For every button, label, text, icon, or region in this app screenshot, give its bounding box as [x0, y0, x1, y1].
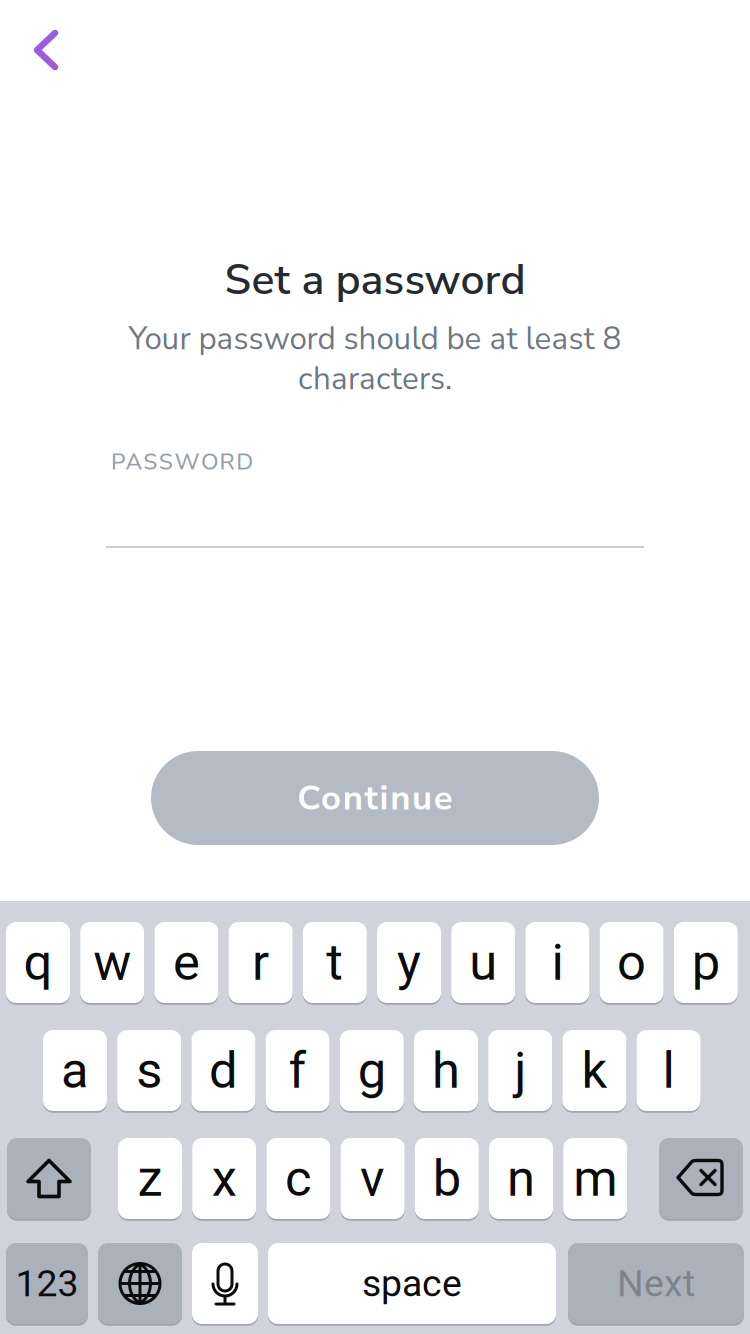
staticText: o [617, 933, 646, 992]
button[interactable]: f [266, 1030, 330, 1111]
staticText: z [137, 1149, 162, 1208]
staticText: p [692, 933, 720, 992]
button[interactable]: u [451, 922, 515, 1003]
staticText: h [432, 1041, 460, 1100]
button[interactable]: Password [106, 448, 644, 548]
button[interactable]: i [525, 922, 589, 1003]
staticText: g [358, 1041, 386, 1100]
button[interactable]: Continue [151, 751, 599, 845]
button[interactable]: t [303, 922, 367, 1003]
button[interactable]: p [674, 922, 738, 1003]
button[interactable]: j [488, 1030, 552, 1111]
button[interactable]: z [118, 1138, 182, 1219]
button[interactable]: e [154, 922, 218, 1003]
button[interactable]: n [489, 1138, 553, 1219]
button[interactable]: g [340, 1030, 404, 1111]
staticText: Your password should be at least 8 [128, 318, 621, 360]
button[interactable]: q [6, 922, 70, 1003]
button[interactable]: h [414, 1030, 478, 1111]
staticText: q [23, 933, 52, 992]
button[interactable]: k [562, 1030, 626, 1111]
staticText: d [209, 1041, 238, 1100]
staticText: t [326, 933, 343, 992]
staticText: b [433, 1149, 461, 1208]
button[interactable]: Next [568, 1243, 744, 1324]
button[interactable]: d [191, 1030, 255, 1111]
staticText: 123 [15, 1262, 78, 1305]
staticText: Set a password [224, 251, 525, 309]
button[interactable]: Back [0, 4, 92, 96]
button[interactable]: Dictate [192, 1243, 258, 1324]
staticText: space [362, 1262, 462, 1305]
button[interactable]: a [43, 1030, 107, 1111]
button[interactable]: Next keyboard [98, 1243, 182, 1324]
button[interactable]: b [415, 1138, 479, 1219]
staticText: characters. [298, 358, 452, 400]
staticText: x [212, 1149, 237, 1208]
button[interactable]: r [229, 922, 293, 1003]
button[interactable]: w [80, 922, 144, 1003]
staticText: l [663, 1041, 675, 1100]
button[interactable]: v [341, 1138, 405, 1219]
staticText: m [573, 1149, 617, 1208]
button[interactable]: l [637, 1030, 701, 1111]
staticText: y [397, 933, 421, 992]
button[interactable]: s [117, 1030, 181, 1111]
staticText: PASSWORD [111, 446, 253, 477]
button[interactable]: Shift [7, 1138, 91, 1219]
button[interactable]: x [192, 1138, 256, 1219]
staticText: r [252, 933, 269, 992]
button[interactable]: space [268, 1243, 556, 1324]
staticText: j [514, 1041, 526, 1100]
button[interactable]: m [563, 1138, 627, 1219]
staticText: Continue [297, 774, 453, 822]
staticText: a [61, 1041, 89, 1100]
button[interactable]: Delete [659, 1138, 743, 1219]
staticText: w [93, 933, 131, 992]
button[interactable]: 123 [6, 1243, 88, 1324]
staticText: i [551, 933, 563, 992]
staticText: c [285, 1149, 312, 1208]
staticText: n [507, 1149, 535, 1208]
staticText: f [289, 1041, 307, 1100]
button[interactable]: c [266, 1138, 330, 1219]
staticText: u [469, 933, 497, 992]
staticText: v [360, 1149, 385, 1208]
staticText: e [173, 933, 200, 992]
staticText: k [581, 1041, 607, 1100]
staticText: s [136, 1041, 162, 1100]
staticText: Next [617, 1262, 695, 1305]
button[interactable]: y [377, 922, 441, 1003]
button[interactable]: o [600, 922, 664, 1003]
